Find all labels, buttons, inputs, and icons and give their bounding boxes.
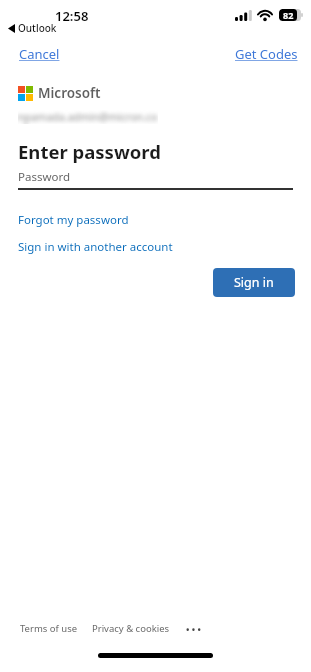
button[interactable]: • • •: [184, 623, 203, 635]
staticText: Sign in: [234, 274, 274, 291]
staticText: • • •: [186, 623, 201, 635]
button[interactable]: Privacy & cookies: [92, 622, 170, 635]
button[interactable]: Get Codes: [228, 38, 305, 70]
staticText: Sign in with another account: [18, 239, 173, 255]
staticText: Terms of use: [20, 622, 78, 635]
staticText: Microsoft: [38, 84, 101, 102]
staticText: Forgot my password: [18, 212, 129, 228]
button[interactable]: Outlook: [8, 21, 57, 35]
staticText: Password: [18, 169, 71, 185]
staticText: 82: [283, 9, 294, 21]
button[interactable]: Forgot my password: [18, 212, 129, 228]
staticText: Privacy & cookies: [92, 622, 170, 635]
staticText: Cancel: [19, 45, 60, 63]
staticText: 12:58: [55, 7, 97, 25]
button[interactable]: Sign in with another account: [18, 239, 173, 255]
button[interactable]: Sign in: [213, 268, 295, 297]
staticText: Get Codes: [235, 45, 298, 63]
button[interactable]: Cancel: [12, 38, 67, 70]
staticText: Enter password: [18, 139, 161, 164]
button[interactable]: Password: [18, 168, 293, 190]
button[interactable]: Terms of use: [20, 622, 78, 635]
staticText: npamada.admin@micron.co: [18, 110, 158, 124]
staticText: Outlook: [18, 21, 57, 35]
